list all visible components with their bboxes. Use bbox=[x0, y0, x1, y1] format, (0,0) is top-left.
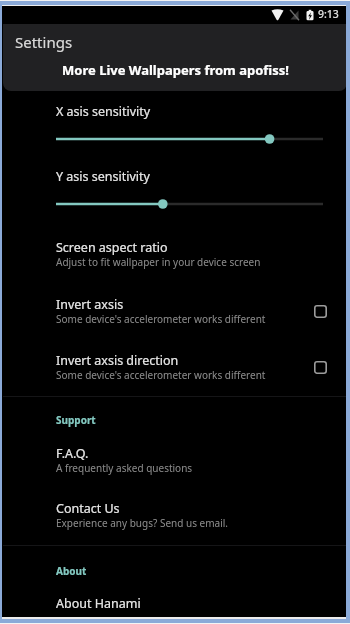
button[interactable]: Invert axsis direction bbox=[314, 361, 327, 374]
staticText: About bbox=[56, 564, 87, 578]
button[interactable]: F.A.Q. bbox=[3, 438, 347, 482]
staticText: Adjust to fit wallpaper in your device s… bbox=[56, 255, 261, 269]
button[interactable]: Invert axsis direction bbox=[3, 345, 347, 389]
button[interactable]: Contact Us bbox=[3, 493, 347, 537]
staticText: A frequently asked questions bbox=[56, 461, 193, 475]
button[interactable]: About bbox=[3, 566, 347, 584]
staticText: Invert axsis bbox=[56, 296, 124, 313]
button[interactable]: More Live Wallpapers from apofiss! bbox=[3, 61, 347, 91]
button[interactable]: Y asis sensitivity bbox=[3, 161, 347, 209]
staticText: 9:13 bbox=[318, 7, 339, 21]
button[interactable]: Invert axsis bbox=[3, 289, 347, 333]
staticText: Screen aspect ratio bbox=[56, 239, 168, 256]
button[interactable]: About Hanami bbox=[3, 590, 347, 618]
button[interactable]: X asis sensitivity bbox=[3, 96, 347, 144]
staticText: Y asis sensitivity bbox=[56, 168, 150, 185]
button[interactable]: Support bbox=[3, 415, 347, 433]
staticText: F.A.Q. bbox=[56, 445, 89, 462]
staticText: Some device's accelerometer works differ… bbox=[56, 368, 266, 382]
staticText: Some device's accelerometer works differ… bbox=[56, 312, 266, 326]
button[interactable]: Invert axsis bbox=[314, 305, 327, 318]
staticText: Contact Us bbox=[56, 500, 120, 517]
staticText: More Live Wallpapers from apofiss! bbox=[62, 61, 289, 79]
staticText: About Hanami bbox=[56, 595, 141, 612]
staticText: Support bbox=[56, 413, 96, 427]
staticText: Settings bbox=[15, 32, 73, 52]
staticText: Experience any bugs? Send us email. bbox=[56, 516, 228, 530]
staticText: Invert axsis direction bbox=[56, 352, 179, 369]
staticText: X asis sensitivity bbox=[56, 103, 151, 120]
button[interactable]: Screen aspect ratio bbox=[3, 232, 347, 276]
